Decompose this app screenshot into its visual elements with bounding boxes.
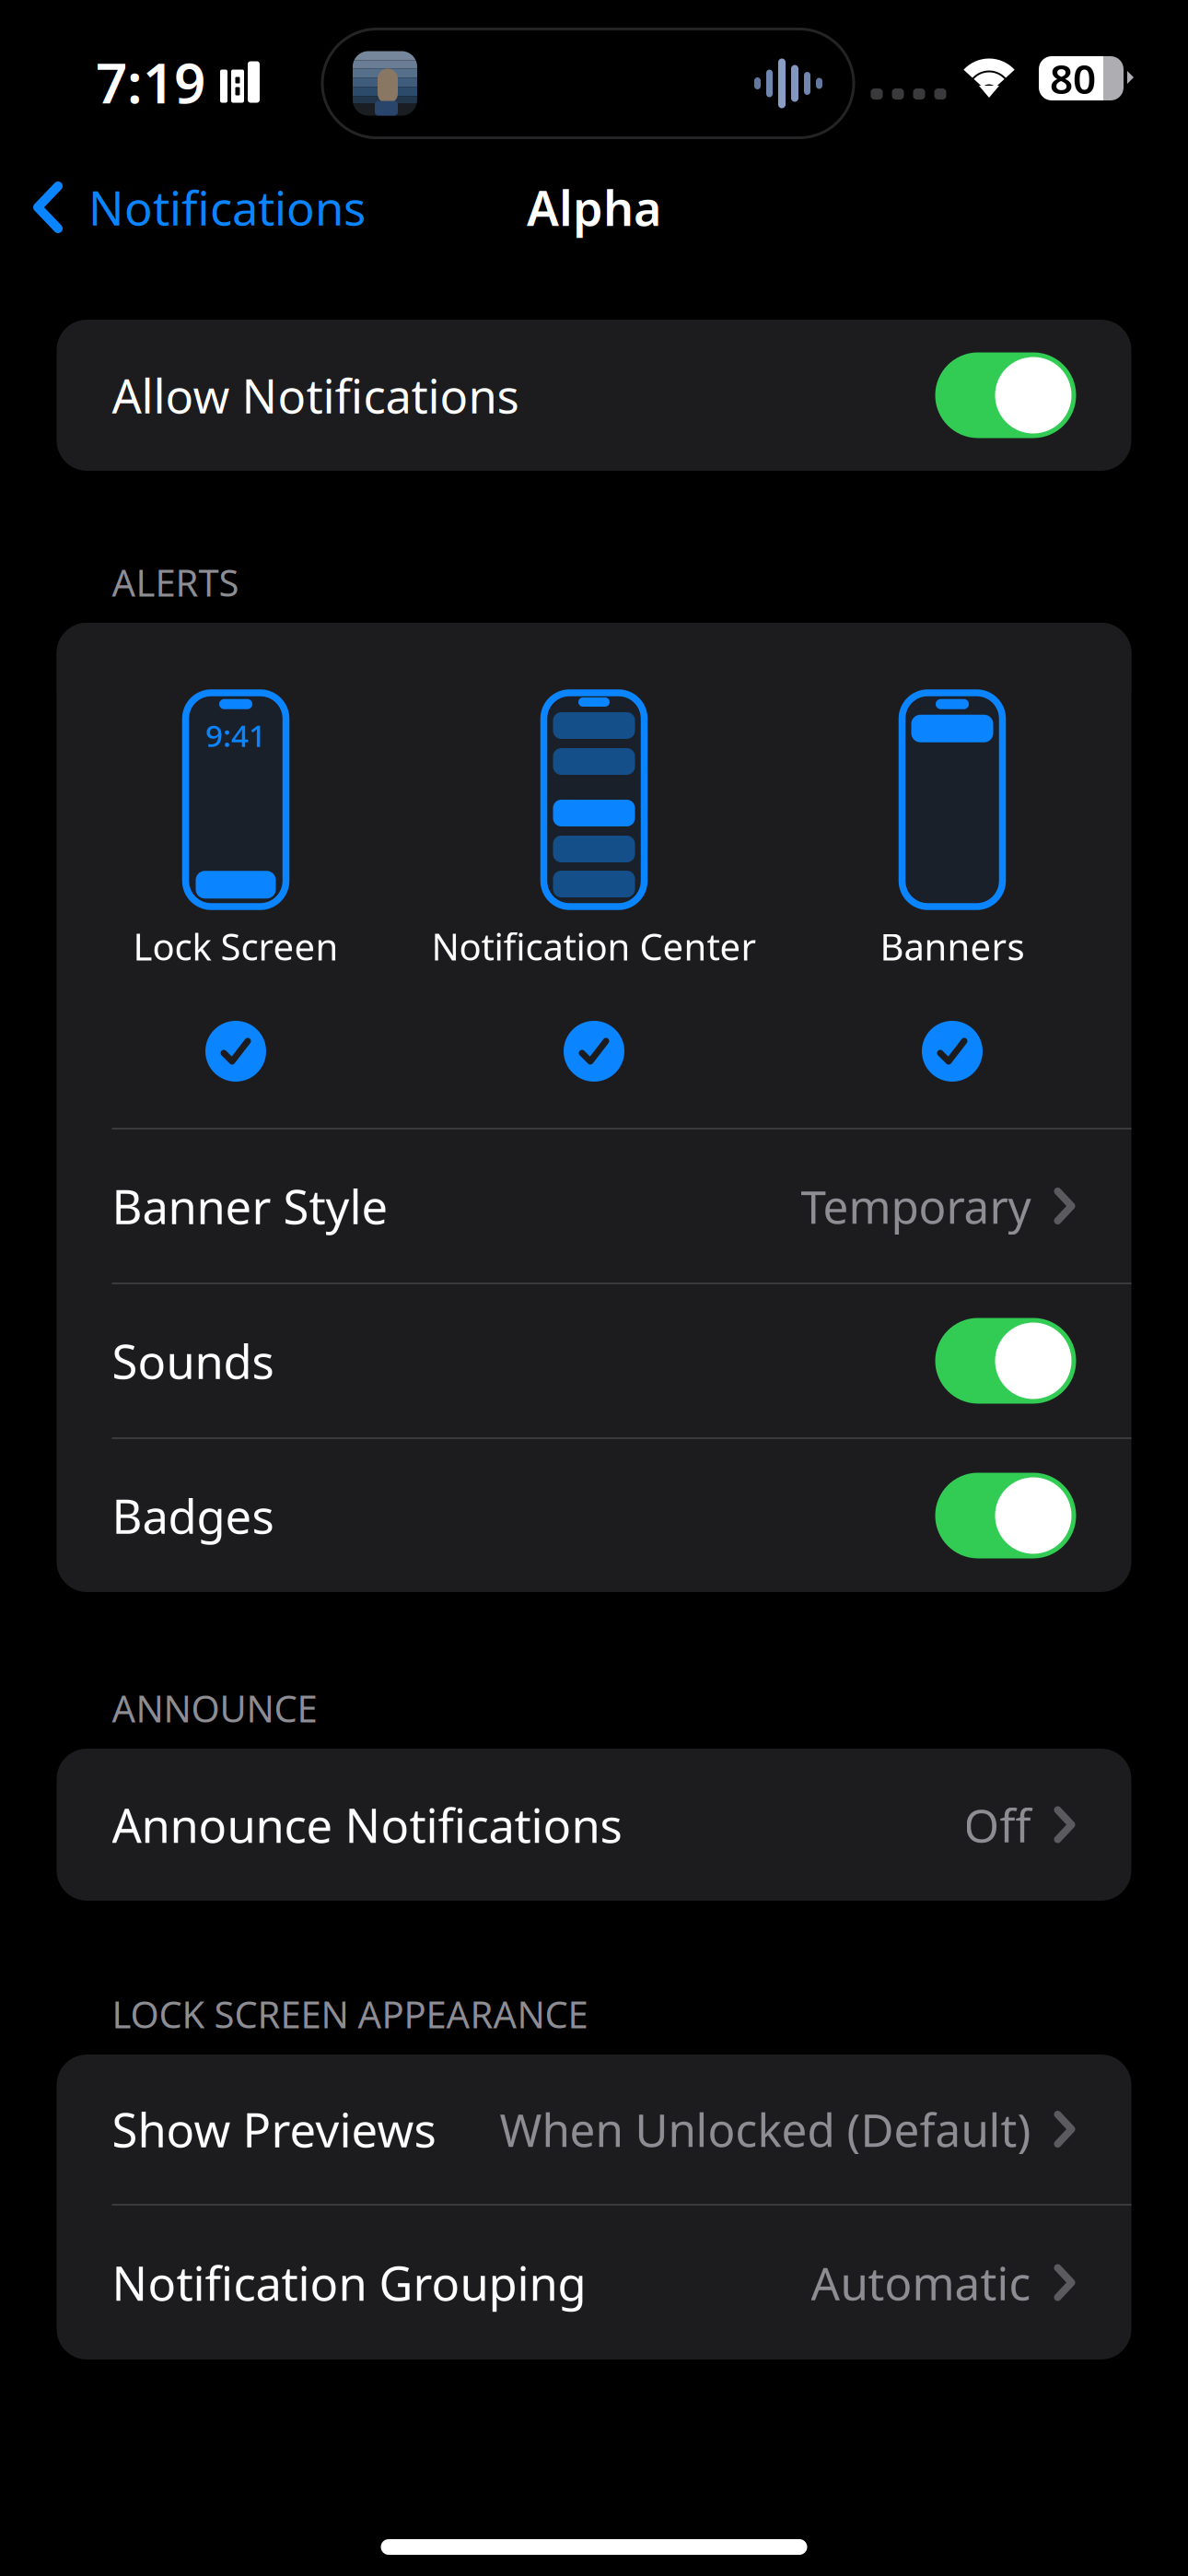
button[interactable]: Badges xyxy=(57,1439,1131,1592)
staticText: Temporary xyxy=(801,1176,1031,1236)
staticText: Alpha xyxy=(527,176,661,239)
button[interactable]: Notification Center xyxy=(415,623,773,1128)
staticText: When Unlocked (Default) xyxy=(500,2099,1031,2159)
staticText: Show Previews xyxy=(112,2098,436,2160)
staticText: Notification Grouping xyxy=(112,2252,586,2314)
button[interactable]: Banner Style xyxy=(57,1130,1131,1282)
staticText: Notifications xyxy=(88,176,366,238)
staticText: Notification Center xyxy=(431,922,757,971)
staticText: Allow Notifications xyxy=(112,364,519,426)
staticText: 9:41 xyxy=(205,715,266,755)
button[interactable]: Notifications xyxy=(0,181,366,234)
staticText: ALERTS xyxy=(112,558,239,607)
staticText: 80 xyxy=(1050,51,1096,105)
staticText: LOCK SCREEN APPEARANCE xyxy=(112,1989,588,2038)
staticText: Lock Screen xyxy=(133,922,338,971)
staticText: Sounds xyxy=(112,1330,274,1392)
button[interactable]: Allow Notifications xyxy=(57,319,1131,472)
button[interactable]: Announce Notifications xyxy=(57,1749,1131,1901)
button[interactable]: Sounds xyxy=(57,1284,1131,1437)
staticText: Off xyxy=(964,1794,1031,1855)
staticText: Banners xyxy=(880,922,1025,971)
button[interactable]: Banners xyxy=(773,623,1131,1128)
staticText: Automatic xyxy=(811,2252,1031,2313)
staticText: Badges xyxy=(112,1485,274,1547)
button[interactable]: 9:41 xyxy=(57,623,415,1128)
staticText: 7:19 xyxy=(96,45,205,119)
staticText: Announce Notifications xyxy=(112,1794,622,1856)
button[interactable]: Show Previews xyxy=(57,2055,1131,2204)
staticText: ANNOUNCE xyxy=(112,1684,317,1733)
staticText: Banner Style xyxy=(112,1175,388,1237)
button[interactable]: Notification Grouping xyxy=(57,2206,1131,2359)
